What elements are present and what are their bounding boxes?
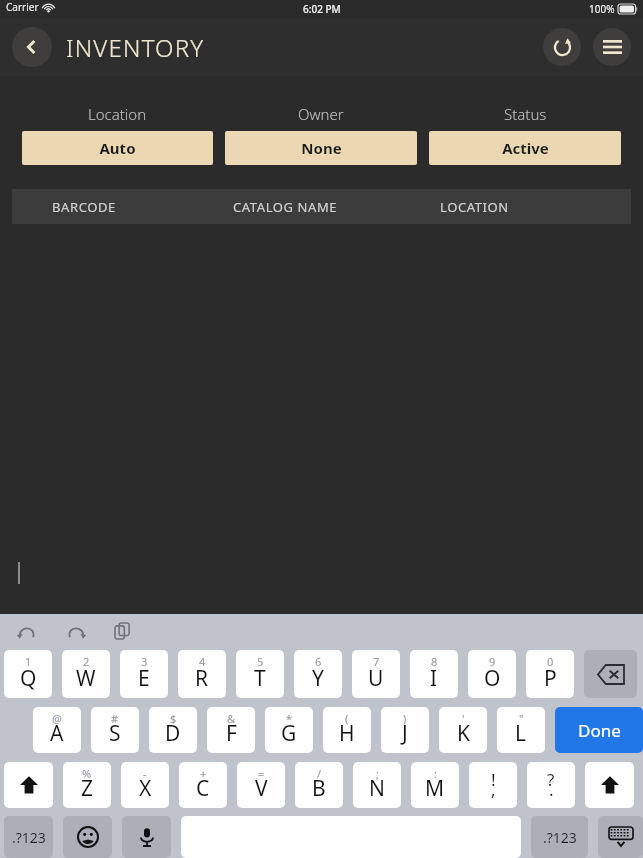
button[interactable]: 6: [294, 650, 342, 698]
button[interactable]: *: [265, 707, 313, 753]
button[interactable]: @: [33, 707, 81, 753]
staticText: P: [544, 664, 557, 693]
staticText: 2: [83, 654, 90, 669]
staticText: CATALOG NAME: [233, 198, 338, 216]
button[interactable]: #: [91, 707, 139, 753]
staticText: .: [549, 778, 554, 801]
staticText: B: [312, 774, 326, 803]
staticText: L: [515, 719, 527, 748]
staticText: BARCODE: [52, 198, 116, 216]
staticText: 1: [25, 654, 32, 669]
button[interactable]: ?: [527, 762, 575, 808]
button[interactable]: Menu: [593, 28, 631, 66]
button[interactable]: 4: [178, 650, 226, 698]
button[interactable]: 7: [352, 650, 400, 698]
button[interactable]: Auto: [22, 131, 213, 165]
staticText: R: [195, 664, 209, 693]
staticText: -: [143, 766, 147, 781]
button[interactable]: None: [225, 131, 417, 165]
staticText: Z: [81, 774, 94, 803]
button[interactable]: ): [381, 707, 429, 753]
staticText: %: [82, 766, 92, 781]
button[interactable]: Redo: [62, 618, 88, 644]
staticText: :: [434, 766, 437, 781]
button[interactable]: Numbers: [531, 816, 588, 858]
button[interactable]: !: [469, 762, 517, 808]
staticText: Done: [578, 719, 621, 742]
button[interactable]: &: [207, 707, 255, 753]
button[interactable]: Done: [555, 707, 643, 753]
button[interactable]: =: [237, 762, 285, 808]
staticText: G: [281, 719, 297, 748]
button[interactable]: (: [323, 707, 371, 753]
staticText: ': [462, 711, 465, 726]
button[interactable]: Active: [429, 131, 621, 165]
button[interactable]: Shift: [585, 762, 634, 808]
button[interactable]: ': [439, 707, 487, 753]
staticText: @: [52, 711, 62, 726]
staticText: Q: [20, 664, 37, 693]
button[interactable]: Numbers: [4, 816, 53, 858]
staticText: .?123: [543, 828, 577, 847]
button[interactable]: Backspace: [584, 650, 637, 698]
button[interactable]: 0: [526, 650, 574, 698]
staticText: +: [200, 766, 207, 781]
staticText: LOCATION: [440, 198, 509, 216]
button[interactable]: 5: [236, 650, 284, 698]
button[interactable]: Back: [12, 27, 52, 67]
button[interactable]: Emoji: [63, 816, 112, 858]
button[interactable]: Paste: [110, 618, 136, 644]
staticText: ?: [547, 768, 555, 791]
staticText: F: [226, 719, 237, 748]
button[interactable]: 3: [120, 650, 168, 698]
staticText: 9: [489, 654, 496, 669]
staticText: .?123: [12, 828, 46, 847]
staticText: /: [317, 766, 322, 781]
button[interactable]: 8: [410, 650, 458, 698]
staticText: 8: [431, 654, 438, 669]
staticText: 6: [315, 654, 322, 669]
button[interactable]: /: [295, 762, 343, 808]
staticText: 4: [199, 654, 206, 669]
staticText: &: [227, 711, 236, 726]
staticText: K: [457, 719, 470, 748]
button[interactable]: $: [149, 707, 197, 753]
button[interactable]: 1: [4, 650, 52, 698]
staticText: C: [196, 774, 210, 803]
staticText: H: [339, 719, 355, 748]
button[interactable]: :: [411, 762, 459, 808]
button[interactable]: -: [121, 762, 169, 808]
button[interactable]: 9: [468, 650, 516, 698]
button[interactable]: Dictation: [122, 816, 171, 858]
staticText: V: [255, 774, 268, 803]
staticText: !: [491, 768, 496, 791]
staticText: None: [301, 138, 342, 158]
staticText: Carrier: [6, 0, 39, 14]
staticText: S: [109, 719, 121, 748]
button[interactable]: Shift: [4, 762, 53, 808]
button[interactable]: +: [179, 762, 227, 808]
staticText: (: [345, 711, 349, 726]
button[interactable]: ;: [353, 762, 401, 808]
staticText: X: [139, 774, 152, 803]
button[interactable]: Undo: [14, 618, 40, 644]
staticText: Status: [504, 104, 547, 124]
staticText: 3: [141, 654, 148, 669]
staticText: I: [430, 664, 438, 693]
staticText: M: [425, 774, 445, 803]
staticText: 0: [547, 654, 554, 669]
button[interactable]: 2: [62, 650, 110, 698]
staticText: #: [111, 711, 119, 726]
staticText: Active: [502, 138, 549, 158]
button[interactable]: Refresh: [543, 28, 581, 66]
staticText: ": [519, 711, 524, 726]
staticText: Location: [88, 104, 147, 124]
staticText: D: [165, 719, 181, 748]
button[interactable]: Hide keyboard: [598, 816, 643, 858]
staticText: Y: [312, 664, 324, 693]
button[interactable]: %: [63, 762, 111, 808]
button[interactable]: ": [497, 707, 545, 753]
staticText: 6:02 PM: [303, 2, 341, 16]
staticText: ;: [376, 766, 379, 781]
